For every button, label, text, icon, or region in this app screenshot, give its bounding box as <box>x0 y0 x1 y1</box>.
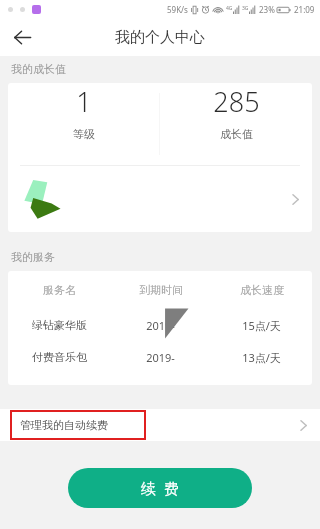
staticText: 服务名 <box>43 283 76 297</box>
staticText: 21:09 <box>294 4 315 15</box>
staticText: 4G <box>226 5 233 12</box>
button[interactable]: Back <box>0 18 44 56</box>
staticText: 等级 <box>73 127 95 141</box>
staticText: 我的成长值 <box>11 62 66 76</box>
staticText: 285 <box>213 83 260 120</box>
staticText: 1 <box>76 83 92 120</box>
staticText: 15点/天 <box>242 318 281 333</box>
staticText: 3G <box>242 5 249 12</box>
staticText: 2019- <box>146 318 175 333</box>
staticText: 成长速度 <box>240 283 284 297</box>
staticText: 2019- <box>146 350 175 365</box>
staticText: 绿钻豪华版 <box>32 318 87 332</box>
staticText: 59K/s <box>167 4 188 15</box>
button[interactable]: 付费音乐包 <box>8 341 312 373</box>
staticText: 管理我的自动续费 <box>20 418 108 432</box>
staticText: 13点/天 <box>242 350 281 365</box>
staticText: 我的服务 <box>11 250 55 264</box>
staticText: 到期时间 <box>139 283 183 297</box>
button[interactable] <box>8 166 312 232</box>
staticText: 23% <box>259 4 275 15</box>
button[interactable]: 续 费 <box>68 468 252 508</box>
staticText: 付费音乐包 <box>32 350 87 364</box>
button[interactable]: 绿钻豪华版 <box>8 309 312 341</box>
staticText: 我的个人中心 <box>115 28 205 47</box>
button[interactable]: 管理我的自动续费 <box>0 409 320 441</box>
staticText: 续 费 <box>141 478 179 498</box>
staticText: 成长值 <box>220 127 253 141</box>
